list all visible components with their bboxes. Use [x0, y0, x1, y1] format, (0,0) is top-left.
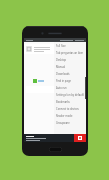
staticText: Bookmarks: [56, 100, 70, 104]
button[interactable]: Full Size: [54, 42, 86, 49]
staticText: Tab preguntas an bien: [56, 51, 84, 55]
button[interactable]: Manual: [54, 63, 86, 70]
button[interactable]: Auto run: [54, 84, 86, 91]
button[interactable]: Site icon: [33, 79, 44, 83]
staticText: Settings (on by default): [56, 93, 85, 97]
other: Thumbnail: [26, 46, 32, 52]
button[interactable]: Thumbnail: [24, 44, 86, 54]
button[interactable]: Reader mode: [54, 112, 86, 119]
staticText: Reader mode: [56, 114, 73, 118]
button[interactable]: Desktop: [54, 56, 86, 63]
staticText: Desktop: [56, 58, 67, 62]
staticText: Downloads: [56, 72, 70, 76]
staticText: Connect to devices: [56, 107, 79, 111]
staticText: Groupware: [56, 121, 70, 125]
staticText: Full Size: [56, 44, 66, 48]
button[interactable]: Find in page: [54, 77, 86, 84]
button[interactable]: Bookmarks: [54, 98, 86, 105]
button[interactable]: Connect to devices: [54, 105, 86, 112]
button[interactable]: Groupware: [54, 119, 86, 126]
button[interactable]: Settings (on by default): [54, 91, 86, 98]
button[interactable]: [26, 86, 84, 93]
button[interactable]: Tab preguntas an bien: [54, 49, 86, 56]
staticText: Find in page: [56, 79, 71, 83]
button[interactable]: [26, 136, 46, 141]
button[interactable]: [24, 38, 86, 42]
button[interactable]: Home: [49, 147, 62, 152]
button[interactable]: Downloads: [54, 70, 86, 77]
button[interactable]: Install: [74, 134, 86, 142]
staticText: Auto run: [56, 86, 67, 90]
staticText: Manual: [56, 65, 66, 69]
